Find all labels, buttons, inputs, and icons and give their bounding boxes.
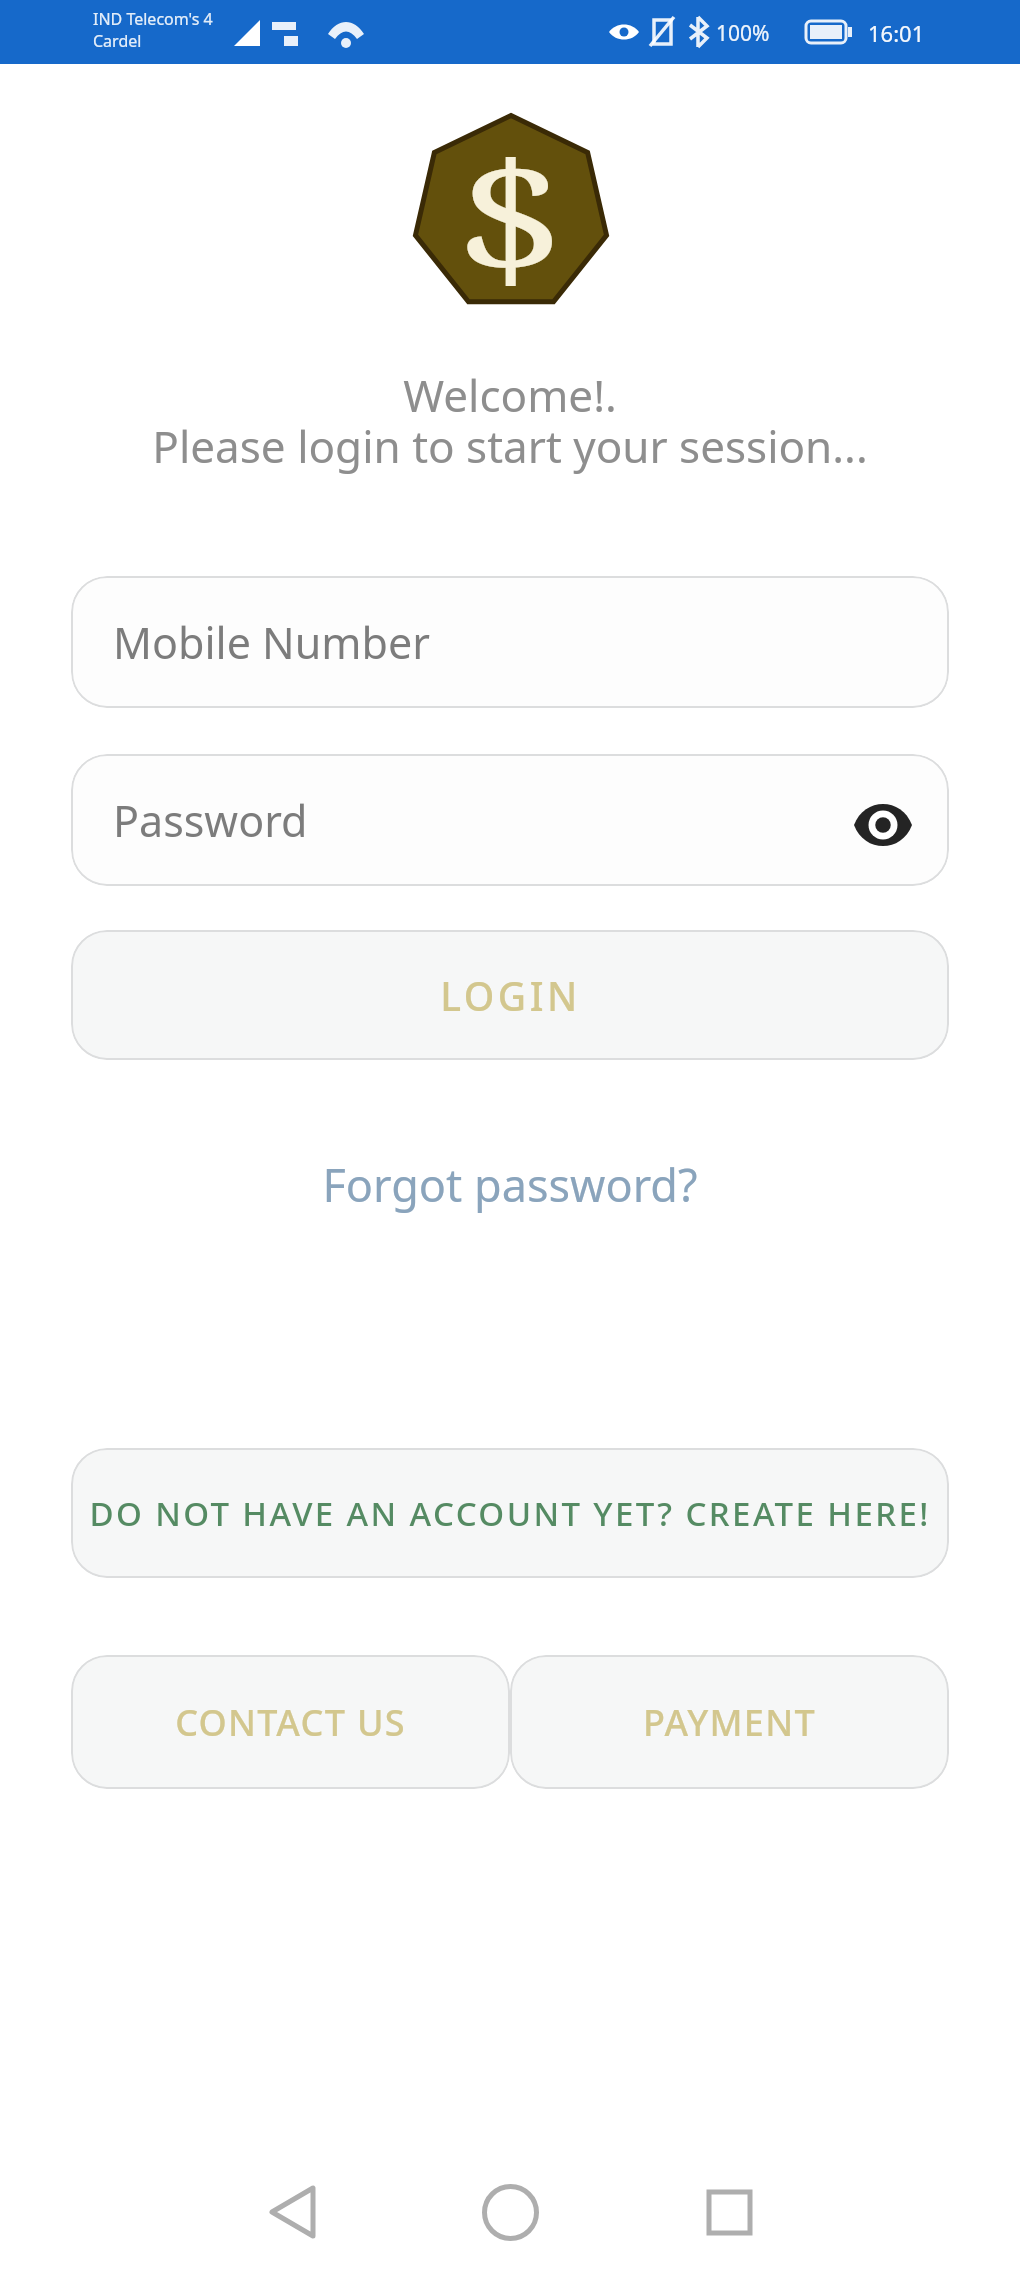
button[interactable]: LOGIN	[71, 930, 949, 1060]
button[interactable]: Show password	[851, 793, 915, 857]
button[interactable]: Password	[71, 754, 949, 886]
staticText: CONTACT US	[175, 1698, 406, 1747]
button[interactable]: DO NOT HAVE AN ACCOUNT YET? CREATE HERE!	[71, 1448, 949, 1578]
button[interactable]: Recent apps	[669, 2152, 789, 2270]
button[interactable]: Forgot password?	[0, 1154, 1020, 1215]
staticText: 16:01	[868, 18, 925, 48]
staticText: Cardel	[93, 30, 142, 52]
button[interactable]: Back	[232, 2152, 352, 2270]
staticText: LOGIN	[440, 969, 581, 1022]
button[interactable]: Home	[450, 2152, 570, 2270]
button[interactable]: PAYMENT	[510, 1655, 949, 1789]
staticText: Welcome!. Please login to start your ses…	[0, 365, 1020, 476]
button[interactable]: Mobile Number	[71, 576, 949, 708]
staticText: DO NOT HAVE AN ACCOUNT YET? CREATE HERE!	[89, 1491, 931, 1536]
staticText: PAYMENT	[643, 1698, 816, 1747]
staticText: 100%	[716, 19, 770, 48]
staticText: Mobile Number	[113, 613, 430, 672]
button[interactable]: CONTACT US	[71, 1655, 510, 1789]
staticText: Password	[113, 791, 308, 850]
staticText: $	[456, 111, 566, 316]
staticText: IND Telecom's 4	[93, 8, 213, 30]
